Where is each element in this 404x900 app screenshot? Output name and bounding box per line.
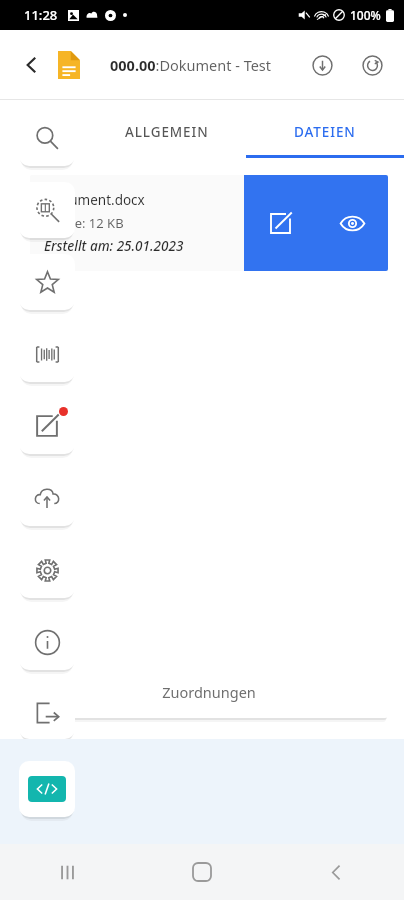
- button[interactable]: Developer tools: [19, 761, 75, 817]
- staticText: ALLGEMEIN: [125, 123, 209, 141]
- staticText: DATEIEN: [294, 123, 356, 141]
- button[interactable]: Search document: [19, 182, 75, 238]
- button[interactable]: DATEIEN: [246, 106, 404, 158]
- button[interactable]: Edit: [19, 398, 75, 454]
- button[interactable]: Search: [19, 110, 75, 166]
- button[interactable]: View: [316, 175, 388, 271]
- button[interactable]: Back: [269, 844, 404, 900]
- button[interactable]: Upload: [19, 470, 75, 526]
- staticText: Zuordnungen: [162, 682, 256, 702]
- button[interactable]: Back: [10, 43, 54, 87]
- button[interactable]: Download: [302, 45, 342, 85]
- button[interactable]: ALLGEMEIN: [88, 106, 246, 158]
- button[interactable]: Zuordnungen: [30, 665, 388, 718]
- button[interactable]: Favourites: [19, 254, 75, 310]
- button[interactable]: Recents: [0, 844, 134, 900]
- button[interactable]: Sync: [352, 45, 392, 85]
- staticText: Dokument.docx: [44, 191, 145, 209]
- button[interactable]: Dokument.docx: [30, 175, 388, 271]
- button[interactable]: Barcode: [19, 326, 75, 382]
- staticText: 100%: [350, 7, 381, 23]
- button[interactable]: Info: [19, 614, 75, 670]
- staticText: Erstellt am: 25.01.2023: [44, 237, 184, 255]
- button[interactable]: Logout: [19, 686, 75, 739]
- staticText: Größe: 12 KB: [44, 214, 124, 232]
- staticText: 11:28: [24, 6, 58, 24]
- button[interactable]: Settings: [19, 542, 75, 598]
- button[interactable]: Edit: [244, 175, 316, 271]
- staticText: 000.00:Dokument - Test: [110, 55, 272, 75]
- button[interactable]: Home: [134, 844, 269, 900]
